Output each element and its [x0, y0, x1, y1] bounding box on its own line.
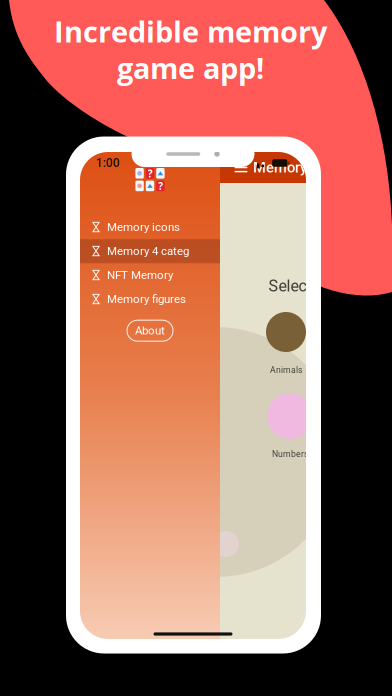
button[interactable]: Memory icons — [80, 215, 220, 239]
button[interactable]: About — [127, 320, 173, 341]
staticText: Memory 4 categ — [107, 244, 189, 258]
staticText: Memory figures — [107, 292, 186, 306]
staticText: Animals — [270, 365, 302, 375]
staticText: About — [135, 324, 165, 337]
button[interactable]: Menu — [229, 156, 253, 178]
staticText: game app! — [117, 48, 264, 87]
staticText: Numbers — [272, 449, 308, 459]
staticText: ? — [147, 166, 152, 180]
staticText: 1:00 — [96, 156, 120, 170]
staticText: Memory icons — [107, 220, 180, 234]
staticText: NFT Memory — [107, 268, 173, 282]
staticText: Memory — [253, 159, 307, 176]
staticText: Select — [268, 277, 311, 295]
staticText: Incredible memory — [54, 12, 327, 51]
button[interactable]: NFT Memory — [80, 263, 220, 287]
button[interactable]: Memory 4 categ — [80, 239, 220, 263]
staticText: ? — [158, 179, 163, 193]
button[interactable]: Memory figures — [80, 287, 220, 311]
